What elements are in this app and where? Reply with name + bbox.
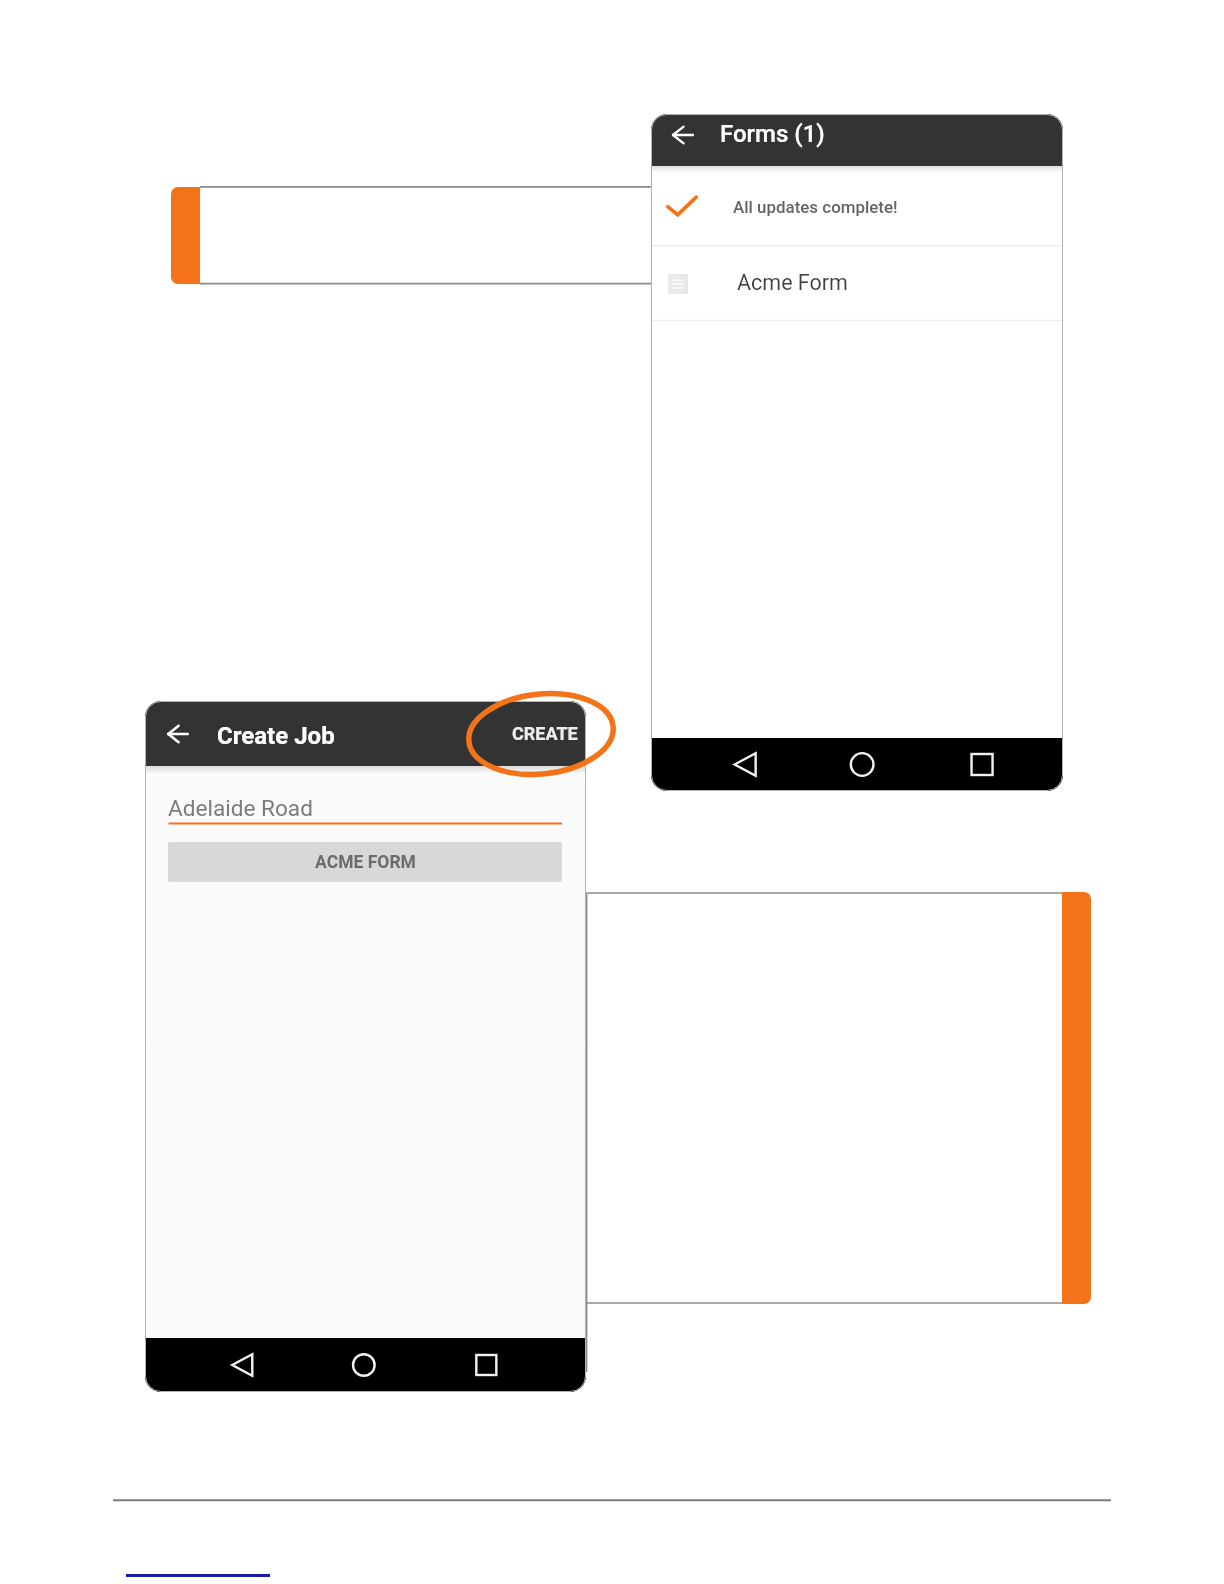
staticText: CREATE xyxy=(512,723,578,744)
staticText: Forms (1) xyxy=(720,120,825,148)
button[interactable]: Back xyxy=(164,720,192,748)
staticText: Acme Form xyxy=(737,270,848,295)
button[interactable]: ACME FORM xyxy=(168,842,562,882)
staticText: All updates complete! xyxy=(733,197,898,217)
button[interactable]: Acme Form xyxy=(651,246,1063,320)
button[interactable]: Back xyxy=(718,738,772,791)
button[interactable]: Recent apps xyxy=(459,1338,513,1392)
button[interactable]: Home xyxy=(835,738,889,791)
button[interactable]: Back xyxy=(669,121,697,149)
button[interactable]: CREATE xyxy=(509,715,581,751)
button[interactable]: All updates complete! xyxy=(651,166,1063,246)
button[interactable]: Home xyxy=(337,1338,391,1392)
staticText: ACME FORM xyxy=(315,852,416,873)
staticText: Adelaide Road xyxy=(168,795,313,821)
button[interactable]: Back xyxy=(215,1338,269,1392)
button[interactable]: Recent apps xyxy=(955,738,1009,791)
staticText: Create Job xyxy=(217,722,335,750)
